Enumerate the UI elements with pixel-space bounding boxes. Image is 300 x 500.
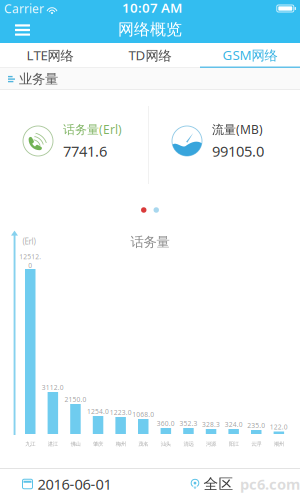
staticText: 3112.0 <box>42 383 64 392</box>
staticText: 话务量 <box>130 234 169 250</box>
staticText: 话务量(Erl) <box>63 121 122 137</box>
staticText: 汕头 <box>161 441 171 447</box>
staticText: 河源 <box>206 441 216 447</box>
staticText: LTE网络 <box>26 46 73 64</box>
button[interactable]: 2016-06-01 <box>12 468 122 500</box>
button[interactable]: Menu <box>5 17 40 43</box>
staticText: 360.0 <box>157 419 175 428</box>
staticText: 阳江 <box>229 441 239 447</box>
staticText: 佛山 <box>70 441 80 447</box>
staticText: 肇庆 <box>93 441 103 447</box>
staticText: 352.3 <box>179 419 197 428</box>
staticText: 湛江 <box>48 441 58 447</box>
staticText: 业务量 <box>19 71 58 87</box>
staticText: 茂名 <box>138 441 148 447</box>
button[interactable]: GSM网络 <box>200 43 300 68</box>
staticText: 2150.0 <box>64 395 86 404</box>
staticText: 0 <box>28 261 32 270</box>
button[interactable]: TD网络 <box>100 43 200 68</box>
staticText: (Erl) <box>22 236 35 247</box>
staticText: 1068.0 <box>132 410 154 419</box>
button[interactable]: LTE网络 <box>0 43 100 68</box>
staticText: 324.0 <box>225 420 243 429</box>
staticText: 流量(MB) <box>212 121 263 137</box>
staticText: 328.3 <box>202 420 220 429</box>
staticText: TD网络 <box>128 46 171 64</box>
staticText: 99105.0 <box>212 141 264 161</box>
staticText: pc6.com <box>240 474 300 494</box>
staticText: 122.0 <box>270 423 288 431</box>
staticText: 九江 <box>25 441 35 447</box>
button[interactable]: 话务量(Erl) <box>0 95 148 187</box>
staticText: 10:07 AM <box>122 0 182 16</box>
staticText: 云浮 <box>251 441 261 447</box>
staticText: 7741.6 <box>63 141 107 161</box>
staticText: 1223.0 <box>110 408 132 417</box>
staticText: 全区 <box>203 475 233 493</box>
staticText: 网络概览 <box>118 20 182 39</box>
staticText: 潮州 <box>274 441 284 447</box>
staticText: Carrier <box>4 0 44 16</box>
button[interactable]: 全区 <box>182 468 242 500</box>
staticText: 清远 <box>183 441 193 447</box>
staticText: 12512. <box>19 252 41 261</box>
staticText: 2016-06-01 <box>37 474 111 494</box>
staticText: GSM网络 <box>222 46 277 64</box>
button[interactable]: 流量(MB) <box>148 95 300 187</box>
staticText: 235.0 <box>247 421 265 430</box>
staticText: 1254.0 <box>87 407 109 416</box>
staticText: 梅州 <box>116 441 126 447</box>
